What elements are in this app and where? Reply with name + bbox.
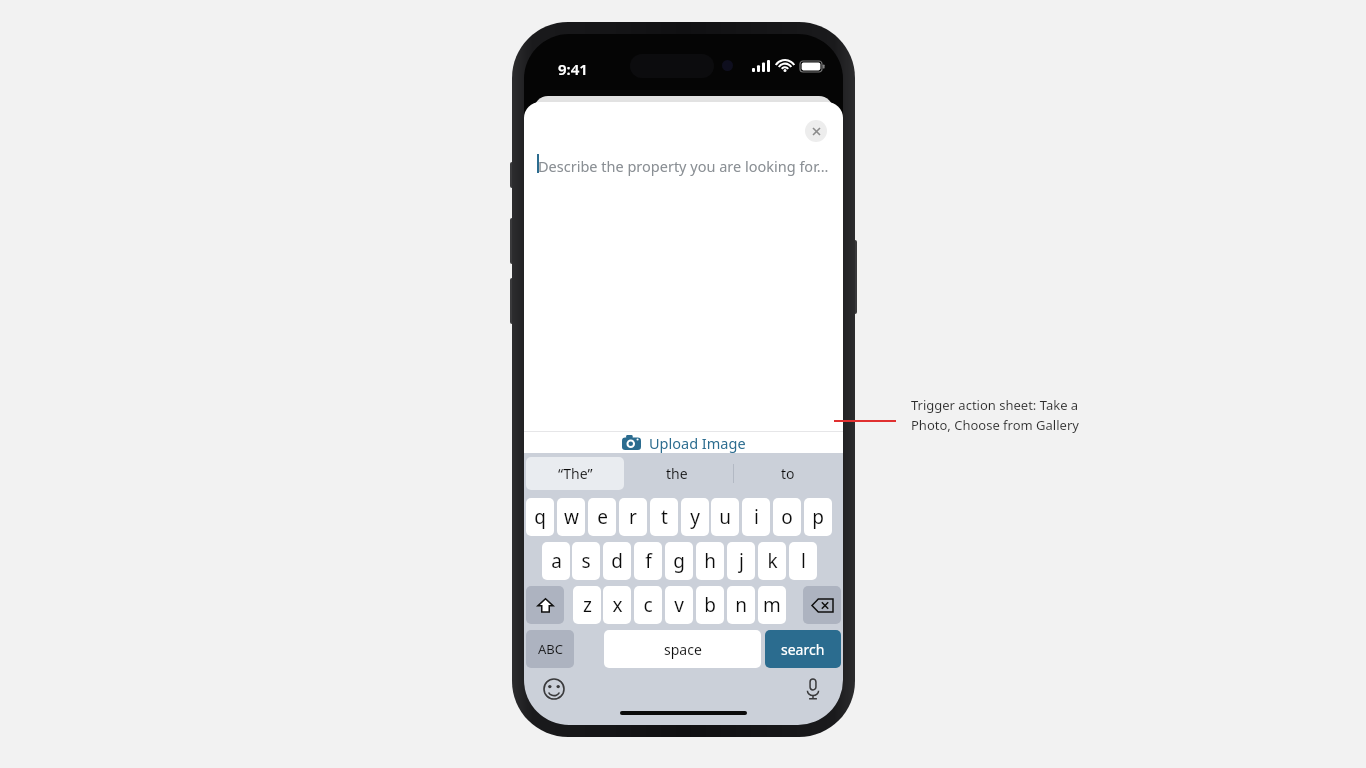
button[interactable]: search	[765, 630, 841, 668]
staticText: space	[664, 640, 702, 659]
staticText: Upload Image	[649, 433, 746, 453]
button[interactable]: f	[634, 542, 662, 580]
staticText: e	[597, 504, 608, 530]
button[interactable]: j	[727, 542, 755, 580]
button[interactable]: space	[604, 630, 761, 668]
button[interactable]: v	[665, 586, 693, 624]
staticText: a	[551, 548, 562, 574]
staticText: Photo, Choose from Gallery	[911, 416, 1079, 434]
button[interactable]: h	[696, 542, 724, 580]
staticText: x	[612, 592, 623, 618]
staticText: u	[719, 504, 731, 530]
button[interactable]: r	[619, 498, 647, 536]
staticText: f	[645, 548, 652, 574]
staticText: ABC	[538, 640, 563, 658]
button[interactable]: t	[650, 498, 678, 536]
staticText: s	[581, 548, 591, 574]
staticText: q	[534, 504, 546, 530]
button[interactable]: l	[789, 542, 817, 580]
button[interactable]: “The”	[526, 457, 624, 490]
button[interactable]: u	[711, 498, 739, 536]
staticText: k	[767, 548, 778, 574]
button[interactable]: b	[696, 586, 724, 624]
button[interactable]: z	[573, 586, 601, 624]
staticText: y	[690, 504, 700, 530]
button[interactable]: the	[628, 457, 726, 490]
staticText: “The”	[558, 464, 593, 483]
button[interactable]: Upload Image	[524, 432, 843, 453]
staticText: Describe the property you are looking fo…	[538, 156, 829, 176]
button[interactable]: w	[557, 498, 585, 536]
staticText: n	[735, 592, 747, 618]
button[interactable]: Emoji keyboard	[541, 676, 567, 702]
button[interactable]: Backspace	[803, 586, 841, 624]
staticText: p	[812, 504, 824, 530]
staticText: 9:41	[558, 59, 588, 79]
button[interactable]: ABC	[526, 630, 574, 668]
staticText: z	[583, 592, 592, 618]
staticText: search	[781, 640, 825, 659]
button[interactable]: Close	[805, 120, 827, 142]
button[interactable]: p	[804, 498, 832, 536]
button[interactable]: n	[727, 586, 755, 624]
staticText: m	[763, 592, 781, 618]
button[interactable]: c	[634, 586, 662, 624]
staticText: b	[704, 592, 716, 618]
staticText: to	[781, 464, 795, 483]
button[interactable]: y	[681, 498, 709, 536]
button[interactable]: o	[773, 498, 801, 536]
button[interactable]: e	[588, 498, 616, 536]
staticText: v	[674, 592, 684, 618]
button[interactable]: d	[603, 542, 631, 580]
button[interactable]: q	[526, 498, 554, 536]
button[interactable]: x	[603, 586, 631, 624]
button[interactable]: i	[742, 498, 770, 536]
button[interactable]: g	[665, 542, 693, 580]
button[interactable]: Shift	[526, 586, 564, 624]
staticText: g	[673, 548, 685, 574]
button[interactable]: k	[758, 542, 786, 580]
staticText: j	[739, 548, 744, 574]
button[interactable]: s	[572, 542, 600, 580]
button[interactable]: m	[758, 586, 786, 624]
staticText: r	[629, 504, 637, 530]
staticText: l	[801, 548, 806, 574]
staticText: the	[666, 464, 688, 483]
staticText: t	[661, 504, 668, 530]
button[interactable]: Dictate	[800, 676, 826, 702]
staticText: Trigger action sheet: Take a	[911, 396, 1079, 414]
button[interactable]: to	[739, 457, 837, 490]
staticText: c	[643, 592, 653, 618]
button[interactable]: a	[542, 542, 570, 580]
staticText: i	[754, 504, 759, 530]
staticText: d	[611, 548, 623, 574]
staticText: w	[564, 504, 579, 530]
staticText: o	[781, 504, 793, 530]
staticText: h	[704, 548, 716, 574]
